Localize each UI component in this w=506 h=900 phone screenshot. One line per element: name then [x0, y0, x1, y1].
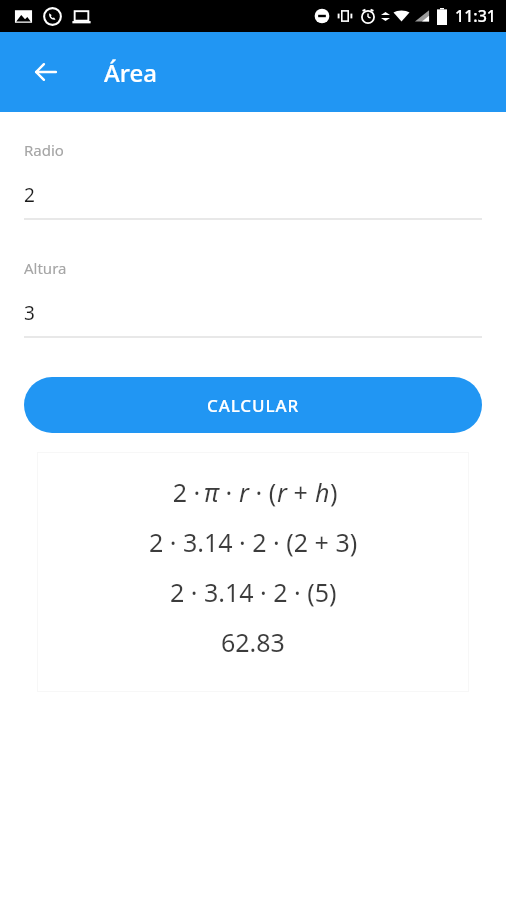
staticText: r	[239, 475, 249, 509]
button[interactable]: CALCULAR	[24, 377, 482, 433]
staticText: ·	[219, 475, 239, 509]
staticText: 2 · 3.14 · 2 · (5)	[170, 575, 337, 609]
button[interactable]: Altura	[24, 258, 482, 338]
staticText: +	[287, 475, 315, 509]
button[interactable]: Radio	[24, 140, 482, 220]
staticText: · (	[249, 475, 277, 509]
staticText: 2 · 3.14 · 2 · (2 + 3)	[149, 525, 358, 559]
staticText: 11:31	[455, 5, 496, 27]
staticText: h	[315, 475, 330, 509]
staticText: Altura	[24, 258, 67, 278]
staticText: 3	[24, 300, 35, 326]
staticText: π	[204, 475, 219, 509]
staticText: )	[330, 475, 338, 509]
staticText: Radio	[24, 140, 64, 160]
staticText: Área	[104, 56, 157, 89]
staticText: r	[277, 475, 287, 509]
staticText: 2 ·	[169, 475, 204, 509]
staticText: 2	[24, 182, 35, 208]
button[interactable]: Back	[22, 48, 70, 96]
staticText: 62.83	[221, 625, 285, 659]
staticText: CALCULAR	[207, 394, 300, 417]
